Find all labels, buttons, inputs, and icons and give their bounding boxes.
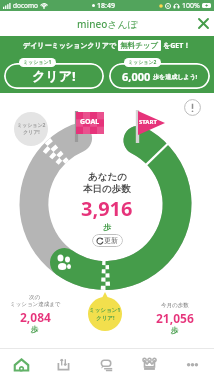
- staticText: 3,916: [81, 195, 133, 222]
- staticText: 無料チップ: [120, 41, 159, 50]
- button[interactable]: Chat: [85, 349, 128, 380]
- staticText: 100%: [182, 1, 200, 11]
- staticText: START: [139, 118, 157, 126]
- staticText: ミッション達成まで: [10, 301, 61, 308]
- staticText: ミッション1: [23, 59, 52, 66]
- button[interactable]: ミッション1: [87, 298, 123, 330]
- button[interactable]: デイリーミッションクリアで: [0, 36, 214, 54]
- staticText: 歩: [171, 326, 179, 335]
- staticText: 今月の歩数: [161, 302, 189, 309]
- staticText: デイリーミッションクリアで: [23, 41, 116, 50]
- staticText: 本日の歩数: [83, 183, 131, 195]
- button[interactable]: 6,000: [109, 63, 210, 89]
- staticText: 6,000: [122, 69, 151, 84]
- button[interactable]: Data usage: [42, 349, 85, 380]
- staticText: 歩: [103, 222, 111, 232]
- staticText: 歩を達成しよう!: [153, 73, 198, 81]
- button[interactable]: Information: [182, 97, 202, 117]
- staticText: docomo: [13, 1, 38, 10]
- staticText: 歩: [31, 325, 39, 334]
- staticText: mineoさんぽ: [77, 17, 138, 31]
- staticText: クリア!: [32, 67, 76, 85]
- staticText: ミッション2: [128, 59, 157, 66]
- staticText: ミッション2: [17, 122, 46, 129]
- staticText: をGET！: [163, 41, 191, 51]
- button[interactable]: 更新: [92, 234, 123, 247]
- staticText: 更新: [104, 236, 118, 245]
- staticText: あなたの: [88, 171, 127, 183]
- button[interactable]: クリア!: [4, 63, 104, 89]
- button[interactable]: Rewards: [128, 349, 171, 380]
- button[interactable]: Home: [0, 349, 42, 380]
- staticText: ミッション1: [89, 306, 121, 314]
- staticText: クリア!: [96, 314, 115, 322]
- staticText: 2,084: [20, 309, 51, 325]
- staticText: 18:49: [97, 1, 115, 11]
- button[interactable]: Close: [193, 13, 214, 34]
- staticText: GOAL: [80, 117, 100, 127]
- staticText: 21,056: [156, 310, 194, 326]
- staticText: 次の: [29, 294, 41, 301]
- button[interactable]: ミッション2: [14, 112, 48, 146]
- staticText: クリア!: [23, 129, 40, 136]
- button[interactable]: More: [171, 349, 214, 380]
